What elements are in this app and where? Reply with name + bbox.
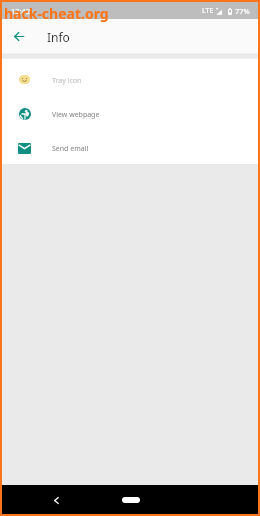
button[interactable]: Tray icon — [2, 62, 258, 96]
staticText: View webpage — [52, 110, 100, 120]
button[interactable]: Home — [122, 497, 140, 503]
button[interactable]: Navigate up — [6, 23, 32, 49]
button[interactable]: Back — [49, 493, 63, 507]
staticText: Info — [47, 29, 70, 45]
staticText: 13:42 — [11, 6, 31, 16]
staticText: 77% — [235, 6, 250, 16]
staticText: Send email — [52, 144, 89, 154]
button[interactable]: View webpage — [2, 96, 258, 130]
staticText: LTE — [202, 6, 214, 16]
button[interactable]: Send email — [2, 130, 258, 164]
staticText: hack-cheat.org — [4, 4, 109, 23]
staticText: Tray icon — [52, 76, 82, 86]
